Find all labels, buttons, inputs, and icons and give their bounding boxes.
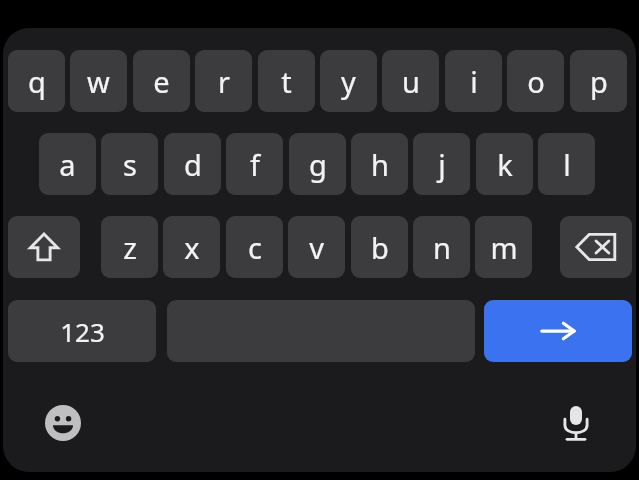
button[interactable]: i <box>445 50 502 112</box>
button[interactable]: f <box>226 133 283 195</box>
button[interactable]: j <box>413 133 470 195</box>
staticText: x <box>184 228 200 267</box>
button[interactable]: e <box>133 50 190 112</box>
button[interactable]: u <box>382 50 439 112</box>
button[interactable]: p <box>570 50 627 112</box>
button[interactable]: Backspace <box>560 216 632 278</box>
button[interactable]: a <box>39 133 96 195</box>
staticText: i <box>470 62 478 101</box>
staticText: m <box>490 228 518 267</box>
button[interactable]: Voice input <box>552 399 600 447</box>
button[interactable]: v <box>288 216 345 278</box>
staticText: c <box>248 228 262 267</box>
staticText: p <box>590 62 608 101</box>
button[interactable]: c <box>226 216 283 278</box>
button[interactable]: s <box>101 133 158 195</box>
button[interactable]: 123 <box>8 300 156 362</box>
button[interactable]: Shift <box>8 216 80 278</box>
button[interactable]: y <box>320 50 377 112</box>
staticText: f <box>250 145 260 184</box>
button[interactable]: z <box>101 216 158 278</box>
staticText: l <box>563 145 571 184</box>
staticText: d <box>184 145 202 184</box>
staticText: y <box>341 62 356 101</box>
staticText: 123 <box>60 314 105 349</box>
staticText: t <box>281 62 292 101</box>
button[interactable]: m <box>475 216 532 278</box>
staticText: k <box>497 145 513 184</box>
staticText: v <box>309 228 324 267</box>
staticText: j <box>438 145 446 184</box>
staticText: o <box>527 62 545 101</box>
button[interactable]: h <box>351 133 408 195</box>
staticText: n <box>433 228 451 267</box>
staticText: h <box>371 145 389 184</box>
button[interactable]: r <box>195 50 252 112</box>
button[interactable]: w <box>70 50 127 112</box>
staticText: a <box>59 145 76 184</box>
staticText: s <box>123 145 137 184</box>
button[interactable]: d <box>164 133 221 195</box>
button[interactable]: x <box>163 216 220 278</box>
staticText: b <box>371 228 389 267</box>
staticText: g <box>309 145 327 184</box>
staticText: z <box>123 228 137 267</box>
button[interactable]: q <box>8 50 65 112</box>
staticText: w <box>87 62 110 101</box>
staticText: u <box>402 62 420 101</box>
button[interactable]: o <box>507 50 564 112</box>
button[interactable]: l <box>538 133 595 195</box>
button[interactable]: k <box>476 133 533 195</box>
button[interactable]: t <box>258 50 315 112</box>
button[interactable]: Emoji <box>39 399 87 447</box>
staticText: e <box>153 62 170 101</box>
button[interactable]: Enter <box>484 300 632 362</box>
button[interactable]: b <box>351 216 408 278</box>
button[interactable]: g <box>289 133 346 195</box>
button[interactable]: n <box>413 216 470 278</box>
staticText: r <box>218 62 230 101</box>
staticText: q <box>28 62 46 101</box>
